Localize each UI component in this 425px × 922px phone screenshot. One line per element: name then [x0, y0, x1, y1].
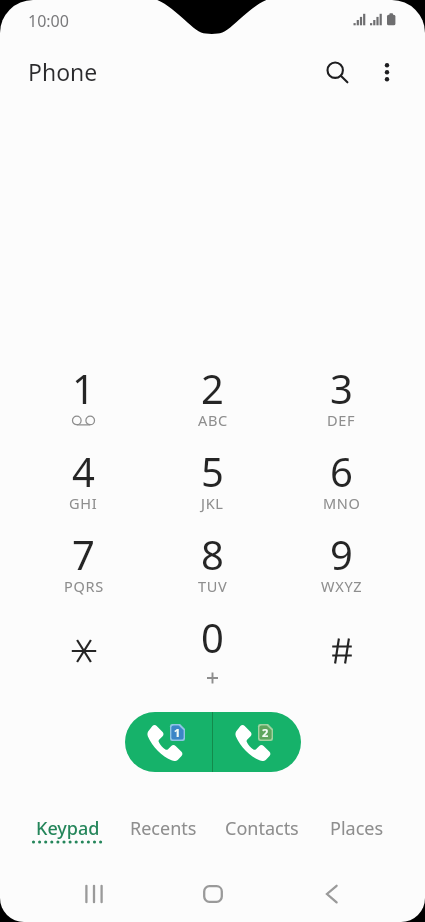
staticText: TUV [198, 576, 228, 596]
button[interactable]: 3 [277, 353, 406, 436]
button[interactable]: Keypad [27, 813, 109, 844]
staticText: 7 [72, 527, 95, 571]
staticText: 9 [330, 527, 353, 571]
button[interactable]: 9 [277, 519, 406, 602]
staticText: 8 [201, 527, 224, 571]
button[interactable]: 0 [148, 602, 277, 688]
staticText: WXYZ [321, 576, 363, 596]
button[interactable]: More options [364, 49, 410, 95]
button[interactable]: 5 [148, 436, 277, 519]
button[interactable] [19, 602, 148, 688]
staticText: GHI [69, 493, 98, 513]
staticText: 6 [330, 444, 353, 488]
staticText: 4 [72, 444, 95, 488]
staticText: 2 [262, 725, 269, 740]
button[interactable]: 2 [148, 353, 277, 436]
staticText: 10:00 [28, 10, 69, 32]
button[interactable]: Recents [121, 813, 206, 844]
staticText: JKL [201, 493, 224, 513]
button[interactable]: Call with SIM 1 [125, 712, 212, 772]
staticText: PQRS [64, 576, 104, 596]
staticText: 0 [201, 610, 224, 654]
staticText: Places [330, 816, 384, 841]
button[interactable] [277, 602, 406, 688]
staticText: 3 [330, 361, 353, 405]
button[interactable]: 6 [277, 436, 406, 519]
button[interactable]: Recent apps [70, 870, 118, 918]
staticText: Contacts [225, 816, 299, 841]
staticText: 2 [201, 361, 224, 405]
staticText: MNO [323, 493, 361, 513]
button[interactable]: 8 [148, 519, 277, 602]
button[interactable]: Contacts [216, 813, 308, 844]
button[interactable]: Search [314, 49, 360, 95]
button[interactable]: Back [308, 870, 356, 918]
staticText: Keypad [36, 816, 100, 841]
button[interactable]: Places [321, 813, 393, 844]
button[interactable]: 4 [19, 436, 148, 519]
staticText: 5 [201, 444, 224, 488]
staticText: Recents [130, 816, 197, 841]
staticText: DEF [327, 410, 356, 430]
staticText: 1 [72, 361, 95, 405]
button[interactable]: 1 [19, 353, 148, 436]
staticText: Phone [28, 56, 98, 87]
button[interactable]: 7 [19, 519, 148, 602]
button[interactable]: Home [189, 870, 237, 918]
staticText: ABC [198, 410, 228, 430]
button[interactable]: Call with SIM 2 [213, 712, 301, 772]
staticText: 1 [174, 725, 181, 740]
